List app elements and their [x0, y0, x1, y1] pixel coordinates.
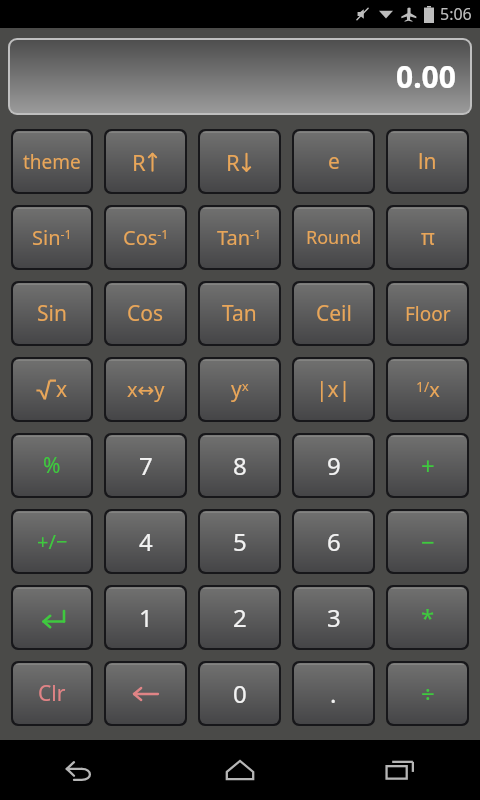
staticText: Tan-1: [217, 224, 262, 251]
button[interactable]: 5: [200, 511, 279, 572]
staticText: |x|: [316, 375, 351, 404]
staticText: .: [330, 677, 337, 710]
button[interactable]: 3: [294, 587, 373, 648]
staticText: Sin-1: [32, 224, 72, 251]
staticText: Round: [306, 225, 362, 250]
staticText: Floor: [405, 301, 451, 327]
staticText: π: [421, 223, 435, 252]
button[interactable]: 7: [106, 435, 185, 496]
staticText: 5: [233, 525, 247, 558]
staticText: +: [421, 449, 435, 482]
button[interactable]: 8: [200, 435, 279, 496]
button[interactable]: Sin: [13, 207, 91, 268]
staticText: ÷: [421, 677, 435, 710]
staticText: *: [421, 601, 435, 634]
staticText: Clr: [38, 679, 66, 708]
staticText: Sin: [37, 299, 67, 328]
button[interactable]: Cos: [106, 207, 185, 268]
button[interactable]: .: [294, 663, 373, 724]
button[interactable]: 2: [200, 587, 279, 648]
staticText: 0.00: [396, 56, 456, 97]
button[interactable]: 0.00: [10, 40, 470, 113]
button[interactable]: %: [13, 435, 91, 496]
button[interactable]: y: [200, 359, 279, 420]
button[interactable]: R: [106, 131, 185, 192]
staticText: yx: [231, 375, 249, 404]
staticText: Cos-1: [123, 224, 169, 251]
button[interactable]: x↔y: [106, 359, 185, 420]
staticText: x↔y: [127, 376, 165, 403]
button[interactable]: Floor: [388, 283, 467, 344]
staticText: %: [43, 451, 61, 480]
button[interactable]: 9: [294, 435, 373, 496]
button[interactable]: +/−: [13, 511, 91, 572]
button[interactable]: x: [388, 359, 467, 420]
button[interactable]: Sin: [13, 283, 91, 344]
staticText: Tan: [222, 299, 257, 328]
staticText: 5:06: [440, 3, 472, 25]
button[interactable]: sqrt: [13, 359, 91, 420]
staticText: 6: [327, 525, 341, 558]
button[interactable]: *: [388, 587, 467, 648]
button[interactable]: |x|: [294, 359, 373, 420]
staticText: Ceil: [316, 299, 352, 328]
staticText: −: [421, 525, 435, 558]
button[interactable]: Clr: [13, 663, 91, 724]
staticText: 1: [139, 601, 153, 634]
staticText: +/−: [37, 528, 68, 555]
button[interactable]: −: [388, 511, 467, 572]
staticText: 1/x: [416, 376, 440, 403]
button[interactable]: Recent apps: [320, 740, 480, 800]
button[interactable]: Back: [0, 740, 160, 800]
button[interactable]: R: [200, 131, 279, 192]
button[interactable]: 4: [106, 511, 185, 572]
button[interactable]: Tan: [200, 283, 279, 344]
button[interactable]: 6: [294, 511, 373, 572]
staticText: 2: [233, 601, 247, 634]
button[interactable]: Home: [160, 740, 320, 800]
button[interactable]: ln: [388, 131, 467, 192]
button[interactable]: +: [388, 435, 467, 496]
staticText: ln: [418, 147, 437, 176]
staticText: 3: [327, 601, 341, 634]
button[interactable]: Ceil: [294, 283, 373, 344]
staticText: 8: [233, 449, 247, 482]
staticText: x: [56, 375, 68, 404]
button[interactable]: 1: [106, 587, 185, 648]
button[interactable]: π: [388, 207, 467, 268]
button[interactable]: Round: [294, 207, 373, 268]
staticText: 4: [139, 525, 153, 558]
staticText: R: [132, 147, 146, 177]
staticText: 7: [139, 449, 153, 482]
button[interactable]: 0: [200, 663, 279, 724]
button[interactable]: Cos: [106, 283, 185, 344]
staticText: theme: [23, 149, 81, 175]
button[interactable]: back: [106, 663, 185, 724]
button[interactable]: e: [294, 131, 373, 192]
staticText: e: [328, 147, 340, 176]
button[interactable]: enter: [13, 587, 91, 648]
staticText: R: [226, 147, 240, 177]
button[interactable]: Tan: [200, 207, 279, 268]
staticText: 0: [233, 677, 247, 710]
staticText: Cos: [127, 299, 164, 328]
button[interactable]: theme: [13, 131, 91, 192]
staticText: 9: [327, 449, 341, 482]
button[interactable]: ÷: [388, 663, 467, 724]
